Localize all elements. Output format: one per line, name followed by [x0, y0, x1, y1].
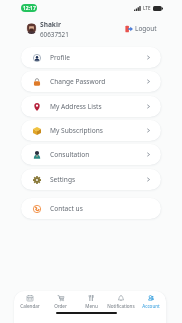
- staticText: Menu: [85, 303, 98, 309]
- staticText: Consultation: [50, 150, 90, 159]
- staticText: My Subscriptions: [50, 126, 103, 135]
- button[interactable]: Notifications: [106, 291, 136, 311]
- button[interactable]: Calendar: [14, 291, 45, 311]
- staticText: 60637521: [40, 30, 69, 39]
- button[interactable]: Profile: [21, 47, 161, 68]
- staticText: Notifications: [107, 303, 135, 309]
- staticText: Shakir: [40, 20, 61, 29]
- staticText: My Address Lists: [50, 102, 102, 111]
- button[interactable]: Menu: [76, 291, 106, 311]
- staticText: Account: [142, 303, 160, 309]
- staticText: Profile: [50, 53, 70, 62]
- button[interactable]: Order: [45, 291, 76, 311]
- staticText: Logout: [135, 24, 157, 33]
- staticText: Change Password: [50, 77, 106, 86]
- staticText: 12:17: [23, 5, 36, 12]
- button[interactable]: My Address Lists: [21, 96, 161, 117]
- button[interactable]: Contact us: [21, 198, 161, 219]
- staticText: Order: [54, 303, 67, 309]
- staticText: LTE: [143, 5, 151, 11]
- button[interactable]: Account: [136, 291, 166, 311]
- button[interactable]: Consultation: [21, 144, 161, 165]
- button[interactable]: Settings: [21, 169, 161, 190]
- button[interactable]: Logout: [123, 22, 159, 35]
- button[interactable]: My Subscriptions: [21, 120, 161, 141]
- button[interactable]: Change Password: [21, 71, 161, 92]
- staticText: Settings: [50, 175, 76, 184]
- staticText: Calendar: [20, 303, 40, 309]
- staticText: Contact us: [50, 204, 83, 213]
